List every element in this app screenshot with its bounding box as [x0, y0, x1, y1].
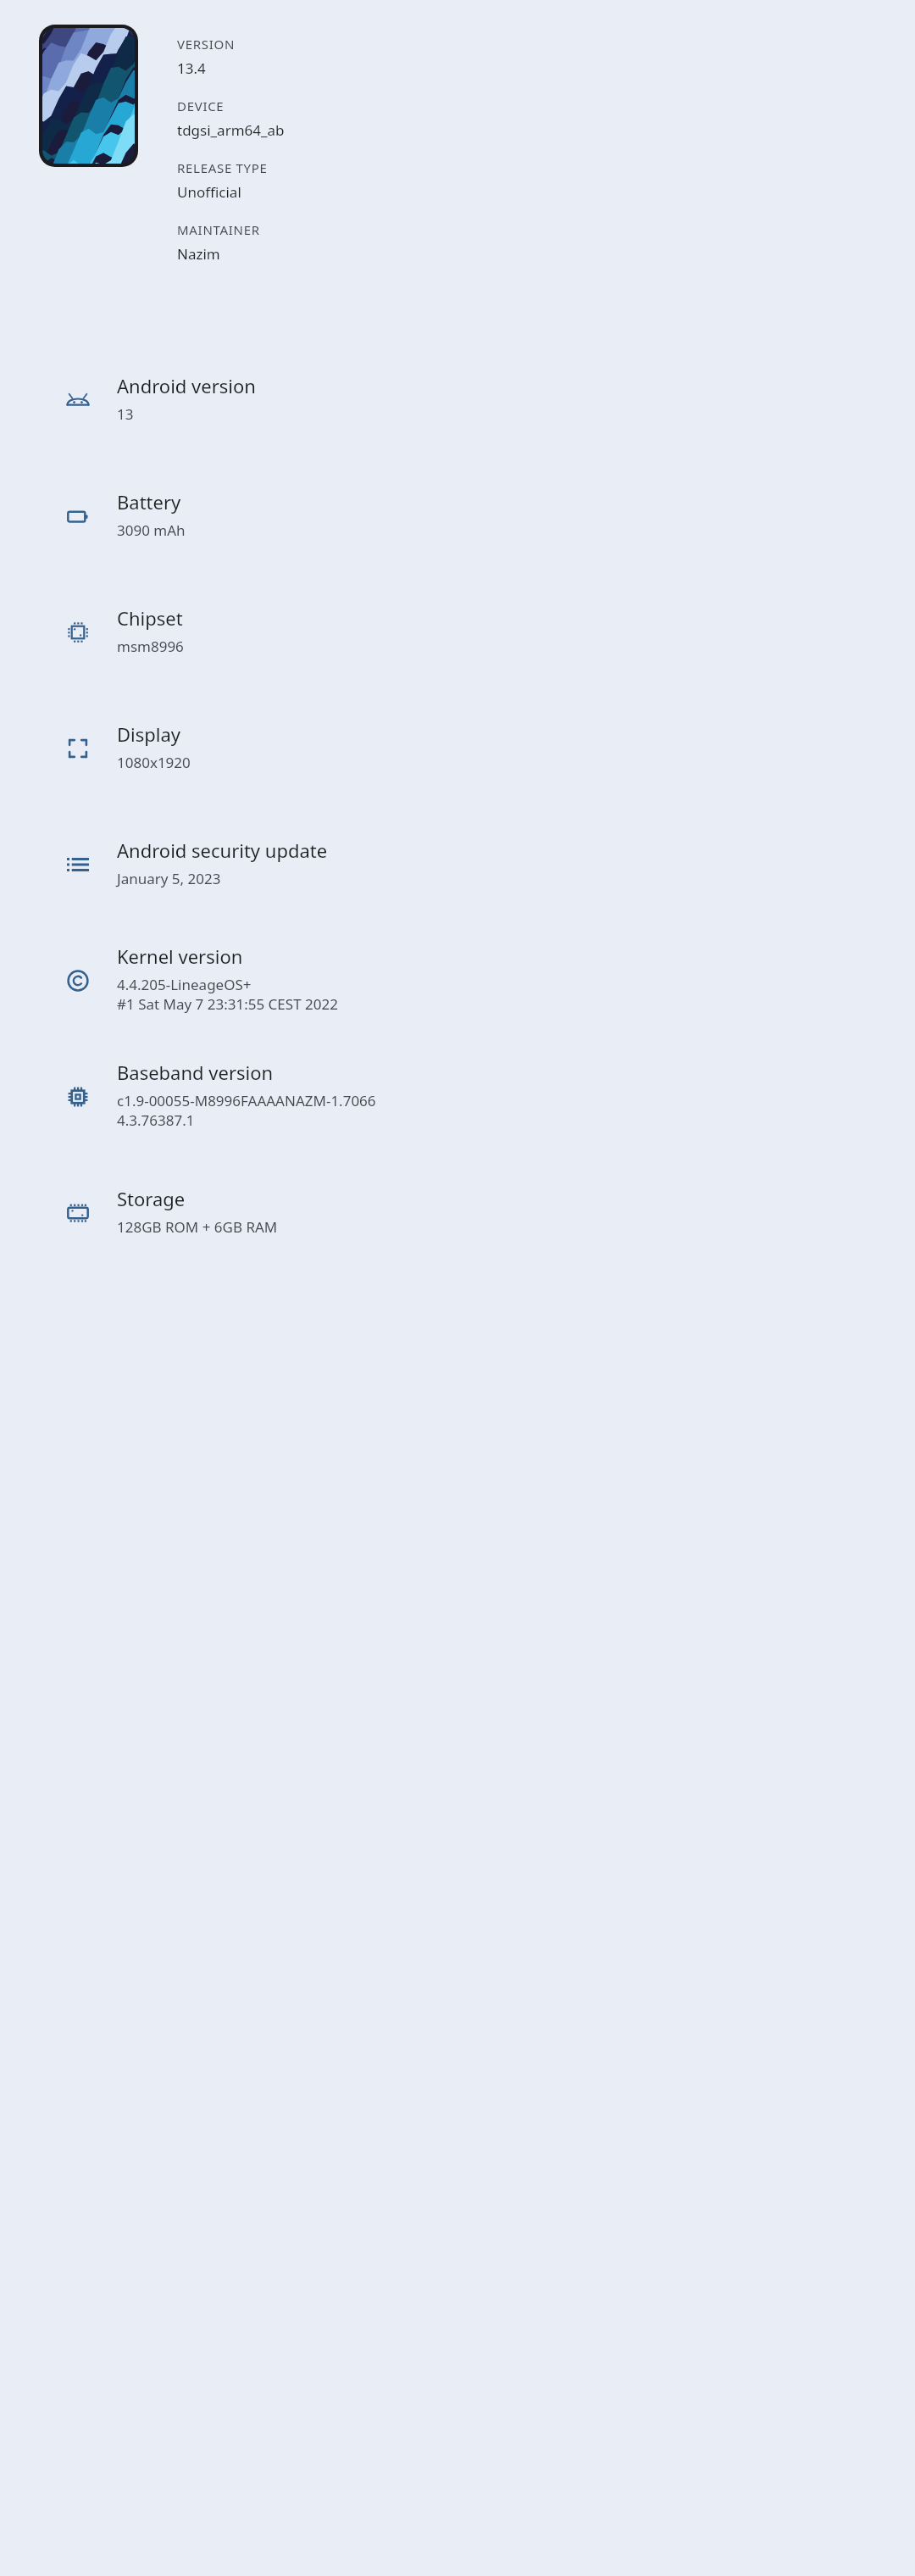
staticText: Android version	[117, 373, 256, 398]
staticText: #1 Sat May 7 23:31:55 CEST 2022	[117, 994, 338, 1014]
staticText: Android security update	[117, 837, 328, 863]
button[interactable]: Chipset	[0, 574, 915, 690]
staticText: January 5, 2023	[117, 869, 221, 888]
staticText: 13	[117, 404, 134, 424]
staticText: Chipset	[117, 605, 183, 631]
staticText: tdgsi_arm64_ab	[177, 120, 285, 140]
staticText: RELEASE TYPE	[177, 159, 268, 176]
staticText: MAINTAINER	[177, 221, 260, 238]
staticText: Unofficial	[177, 182, 241, 202]
staticText: Kernel version	[117, 943, 243, 969]
staticText: 4.4.205-LineageOS+	[117, 975, 252, 994]
staticText: 3090 mAh	[117, 520, 186, 540]
button[interactable]: Android version	[0, 342, 915, 458]
button[interactable]: Android security update	[0, 806, 915, 922]
button[interactable]: Display	[0, 690, 915, 806]
staticText: VERSION	[177, 36, 236, 53]
button[interactable]: Storage	[0, 1154, 915, 1271]
staticText: 4.3.76387.1	[117, 1110, 195, 1130]
button[interactable]: Baseband version	[0, 1038, 915, 1154]
staticText: c1.9-00055-M8996FAAAANAZM-1.7066	[117, 1091, 376, 1110]
staticText: DEVICE	[177, 97, 225, 114]
staticText: Storage	[117, 1186, 186, 1211]
staticText: Baseband version	[117, 1060, 274, 1085]
button[interactable]: Battery	[0, 458, 915, 574]
staticText: msm8996	[117, 637, 184, 656]
staticText: 13.4	[177, 58, 206, 78]
staticText: Display	[117, 721, 181, 747]
staticText: 1080x1920	[117, 753, 191, 772]
button[interactable]: Kernel version	[0, 922, 915, 1038]
staticText: Nazim	[177, 244, 220, 264]
staticText: 128GB ROM + 6GB RAM	[117, 1217, 278, 1237]
staticText: Battery	[117, 489, 181, 515]
